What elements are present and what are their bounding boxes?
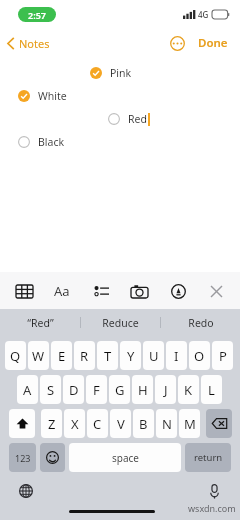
button[interactable]: D <box>63 375 84 404</box>
button[interactable]: C <box>87 409 108 438</box>
button[interactable]: Z <box>41 409 62 438</box>
button[interactable]: Markup <box>163 276 193 306</box>
staticText: T <box>104 347 112 365</box>
button[interactable]: Pink <box>88 64 134 82</box>
staticText: K <box>184 381 193 399</box>
staticText: 123 <box>15 452 31 464</box>
button[interactable]: P <box>212 341 233 370</box>
button[interactable]: X <box>64 409 85 438</box>
staticText: Q <box>10 347 21 365</box>
button[interactable]: F <box>86 375 107 404</box>
button[interactable]: 123 <box>9 443 36 472</box>
button[interactable]: Red <box>106 110 152 128</box>
staticText: O <box>194 347 205 365</box>
staticText: X <box>71 415 79 433</box>
button[interactable]: More options <box>164 30 190 56</box>
staticText: P <box>219 347 227 365</box>
button[interactable]: Dictate <box>202 479 226 503</box>
button[interactable]: S <box>40 375 61 404</box>
button[interactable]: B <box>133 409 154 438</box>
button[interactable]: Black <box>16 133 67 151</box>
staticText: Reduce <box>102 316 139 330</box>
button[interactable]: return <box>185 443 231 472</box>
button[interactable]: H <box>132 375 153 404</box>
staticText: space <box>112 451 139 465</box>
button[interactable]: space <box>69 443 181 472</box>
button[interactable]: I <box>166 341 187 370</box>
staticText: J <box>164 381 168 399</box>
button[interactable]: Y <box>120 341 141 370</box>
staticText: Red <box>128 112 147 126</box>
button[interactable]: N <box>156 409 177 438</box>
button[interactable]: R <box>74 341 95 370</box>
button[interactable]: Backspace <box>206 409 232 438</box>
staticText: A <box>23 381 32 399</box>
button[interactable]: V <box>110 409 131 438</box>
staticText: S <box>47 381 55 399</box>
button[interactable]: J <box>155 375 176 404</box>
button[interactable]: E <box>51 341 72 370</box>
staticText: White <box>38 89 67 103</box>
button[interactable]: “Red” <box>0 309 80 336</box>
staticText: wsxdn.com <box>188 502 236 514</box>
button[interactable]: G <box>109 375 130 404</box>
staticText: L <box>208 381 215 399</box>
staticText: E <box>58 347 66 365</box>
button[interactable]: W <box>28 341 49 370</box>
staticText: “Red” <box>27 316 54 330</box>
button[interactable]: M <box>179 409 200 438</box>
staticText: M <box>184 415 196 433</box>
button[interactable]: Insert table <box>9 276 39 306</box>
button[interactable]: Reduce <box>81 309 160 336</box>
staticText: 2:57 <box>28 9 46 21</box>
staticText: H <box>138 381 148 399</box>
button[interactable]: A <box>17 375 38 404</box>
button[interactable]: Checklist <box>86 276 116 306</box>
staticText: Black <box>38 135 65 149</box>
button[interactable]: Close keyboard <box>201 276 231 306</box>
staticText: B <box>139 415 148 433</box>
button[interactable]: Emoji <box>40 443 65 472</box>
button[interactable]: White <box>16 87 69 105</box>
button[interactable]: Redo <box>161 309 240 336</box>
button[interactable]: O <box>189 341 210 370</box>
button[interactable]: Shift <box>9 409 35 438</box>
staticText: D <box>69 381 79 399</box>
button[interactable]: U <box>143 341 164 370</box>
staticText: N <box>162 415 172 433</box>
staticText: Aa <box>54 282 70 300</box>
staticText: Done <box>198 35 228 51</box>
staticText: return <box>194 451 223 464</box>
staticText: Redo <box>188 316 214 330</box>
button[interactable]: T <box>97 341 118 370</box>
button[interactable]: K <box>178 375 199 404</box>
staticText: F <box>93 381 100 399</box>
staticText: V <box>117 415 125 433</box>
staticText: Notes <box>19 36 50 51</box>
button[interactable]: Done <box>194 31 232 55</box>
staticText: C <box>93 415 102 433</box>
staticText: Z <box>48 415 56 433</box>
button[interactable]: Text format <box>47 276 77 306</box>
staticText: W <box>32 347 45 365</box>
staticText: G <box>115 381 125 399</box>
button[interactable]: L <box>201 375 222 404</box>
button[interactable]: Change keyboard language <box>14 479 38 503</box>
button[interactable]: Q <box>5 341 26 370</box>
staticText: 4G <box>198 9 209 20</box>
staticText: I <box>174 347 179 365</box>
staticText: R <box>80 347 89 365</box>
button[interactable]: Notes <box>0 32 58 55</box>
staticText: U <box>149 347 159 365</box>
staticText: Y <box>127 347 135 365</box>
button[interactable]: Camera <box>124 276 154 306</box>
staticText: Pink <box>110 66 132 80</box>
